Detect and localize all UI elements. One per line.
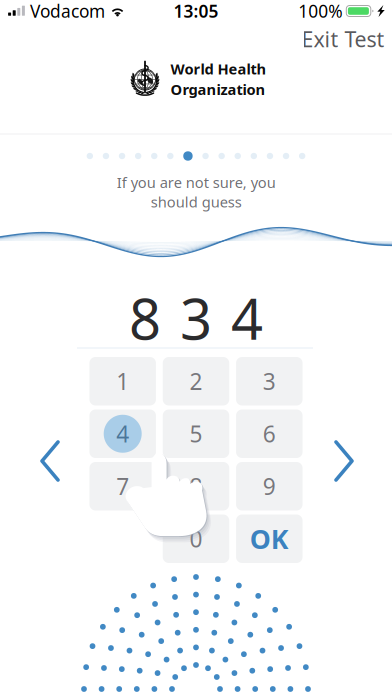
staticText: 6 [263, 419, 276, 449]
staticText: 5 [189, 419, 202, 449]
staticText: Exit Test [301, 25, 384, 53]
button[interactable]: 1 [89, 357, 156, 405]
button[interactable]: 4 [89, 409, 156, 458]
staticText: Vodacom [30, 0, 105, 22]
staticText: OK [250, 521, 289, 556]
staticText: 3 [180, 281, 212, 355]
button[interactable]: 9 [236, 462, 303, 510]
button[interactable]: 7 [89, 462, 156, 510]
staticText: 4 [116, 419, 129, 449]
staticText: 13:05 [173, 0, 218, 22]
staticText: 1 [116, 366, 129, 396]
staticText: 3 [263, 366, 276, 396]
staticText: 9 [263, 471, 276, 501]
button[interactable]: 3 [236, 357, 303, 405]
staticText: 100% [298, 0, 342, 22]
button[interactable]: OK [236, 514, 303, 563]
button[interactable]: Exit Test [285, 18, 392, 60]
staticText: 0 [189, 524, 202, 554]
button[interactable]: Previous question [28, 428, 72, 494]
button[interactable]: 8 [163, 462, 229, 510]
staticText: 7 [116, 471, 129, 501]
staticText: World Health [170, 59, 266, 78]
staticText: 8 [129, 281, 161, 355]
button[interactable]: 5 [163, 409, 229, 458]
staticText: 2 [189, 366, 202, 396]
button[interactable]: 0 [163, 514, 229, 563]
staticText: Organization [170, 79, 265, 99]
button[interactable]: Next question [322, 428, 366, 494]
staticText: If you are not sure, you should guess [116, 172, 275, 211]
button[interactable]: 2 [163, 357, 229, 405]
staticText: 8 [189, 471, 202, 501]
button[interactable]: 6 [236, 409, 303, 458]
staticText: 4 [231, 281, 263, 355]
